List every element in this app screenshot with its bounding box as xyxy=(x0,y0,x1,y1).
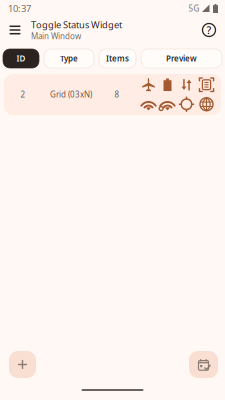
button[interactable]: Schedule xyxy=(189,351,218,378)
staticText: ? xyxy=(206,23,211,37)
staticText: 8 xyxy=(114,89,119,100)
staticText: ID xyxy=(16,53,25,64)
staticText: Main Window xyxy=(31,31,81,41)
staticText: Items xyxy=(106,53,129,64)
staticText: 10:37 xyxy=(8,2,31,15)
button[interactable]: Preview xyxy=(141,49,222,68)
staticText: Preview xyxy=(166,53,197,64)
button[interactable]: Add xyxy=(9,351,36,378)
staticText: Type xyxy=(60,53,78,64)
staticText: Toggle Status Widget xyxy=(31,18,122,31)
staticText: 2 xyxy=(20,89,25,100)
button[interactable]: Type xyxy=(44,49,94,68)
button[interactable]: Menu xyxy=(4,17,26,43)
button[interactable]: ID xyxy=(3,49,39,68)
staticText: 5G xyxy=(188,3,199,14)
staticText: Grid (03xN) xyxy=(50,89,92,100)
button[interactable]: Help xyxy=(197,17,221,43)
button[interactable]: Items xyxy=(99,49,136,68)
